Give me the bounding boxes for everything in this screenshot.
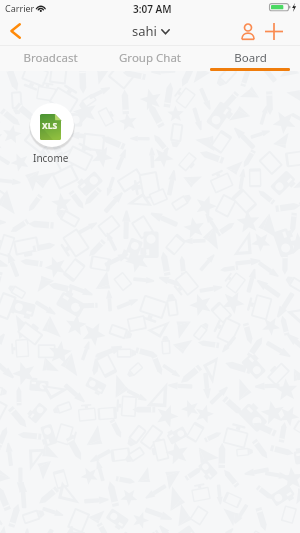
button[interactable]: Contacts [235,18,260,44]
button[interactable]: XLS [29,103,75,164]
staticText: 3:07 AM [133,2,172,16]
button[interactable]: sahi [132,22,166,40]
staticText: XLS [42,120,58,132]
staticText: Income [33,151,69,165]
button[interactable]: Broadcast [0,46,100,71]
button[interactable]: Group Chat [100,46,200,71]
staticText: Broadcast [23,50,78,66]
staticText: sahi [132,22,157,40]
staticText: Carrier [5,2,35,14]
button[interactable]: Add [261,18,286,44]
button[interactable]: Back [2,18,28,44]
staticText: Board [234,50,267,66]
staticText: Group Chat [119,50,181,66]
button[interactable]: Board [200,46,300,71]
